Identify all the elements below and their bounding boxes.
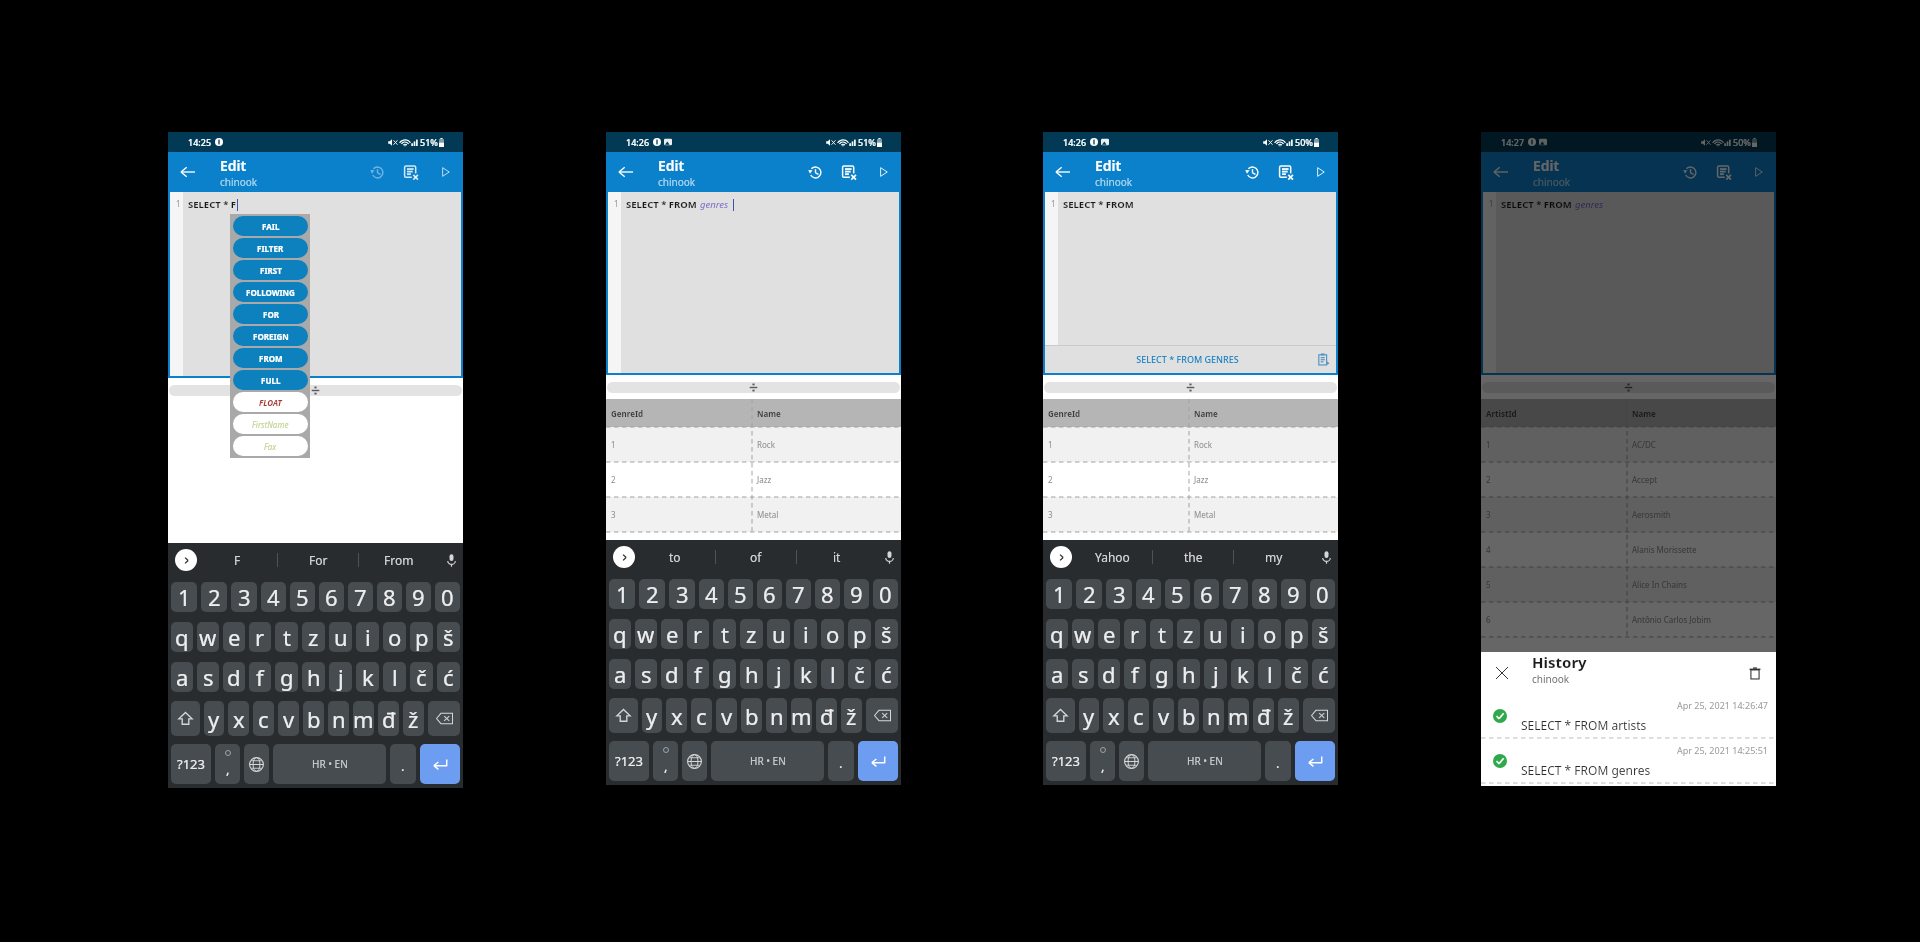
button[interactable]: a [609,659,631,689]
button[interactable]: FirstName [233,414,308,434]
button[interactable]: Fax [233,436,308,456]
button[interactable]: ž [841,698,862,733]
button[interactable]: đ [1253,698,1274,733]
button[interactable]: the [1153,540,1233,574]
button[interactable]: o [821,619,844,649]
button[interactable]: x [228,701,249,736]
button[interactable]: Close history [1481,652,1523,694]
button[interactable] [420,744,460,784]
button[interactable]: 5 [1481,567,1776,602]
button[interactable]: e [1098,619,1120,649]
button[interactable]: č [410,662,433,692]
button[interactable]: š [437,622,460,652]
button[interactable]: SELECT * FROM GENRES [1058,345,1336,373]
button[interactable]: FULL [233,370,308,390]
button[interactable]: Expand toolbar [1050,546,1072,568]
button[interactable]: FILTER [233,238,308,258]
button[interactable]: s [635,659,657,689]
button[interactable]: d [223,662,245,692]
button[interactable]: d [1098,659,1120,689]
button[interactable]: v [278,701,299,736]
button[interactable] [428,701,460,736]
button[interactable] [1046,698,1075,733]
button[interactable] [866,698,898,733]
button[interactable]: Expand toolbar [613,546,635,568]
button[interactable] [858,741,898,781]
button[interactable]: l [1258,659,1281,689]
button[interactable]: 1 [1046,579,1072,609]
button[interactable]: Clear query [394,155,428,189]
button[interactable]: 1 [606,427,901,462]
button[interactable]: 2 [639,579,665,609]
button[interactable]: . [828,741,854,781]
button[interactable]: 7 [348,582,373,612]
button[interactable]: g [1150,659,1173,689]
button[interactable]: đ [816,698,837,733]
button[interactable]: c [253,701,274,736]
button[interactable]: Voice input [1314,540,1338,574]
button[interactable]: m [791,698,812,733]
button[interactable]: HR • EN [1148,741,1261,781]
button[interactable] [609,698,638,733]
button[interactable]: 3 [1106,579,1132,609]
button[interactable]: ć [437,662,460,692]
button[interactable]: q [171,622,193,652]
button[interactable] [244,744,269,784]
button[interactable]: t [1150,619,1173,649]
button[interactable]: Apr 25, 2021 14:25:51 [1481,739,1776,784]
button[interactable]: 0 [873,579,898,609]
button[interactable]: ?123 [1046,741,1086,781]
button[interactable]: 2 [1481,462,1776,497]
button[interactable]: b [1178,698,1199,733]
button[interactable]: 6 [1194,579,1219,609]
button[interactable]: . [1265,741,1291,781]
button[interactable]: i [356,622,379,652]
button[interactable]: k [356,662,379,692]
button[interactable]: h [1177,659,1200,689]
button[interactable]: HR • EN [273,744,386,784]
button[interactable]: FAIL [233,216,308,236]
button[interactable]: k [794,659,817,689]
button[interactable] [682,741,707,781]
button[interactable]: c [1128,698,1149,733]
button[interactable]: v [716,698,737,733]
button[interactable]: u [329,622,352,652]
button[interactable]: Back [606,152,646,192]
button[interactable]: Resize editor [1044,382,1337,393]
button[interactable]: w [197,622,219,652]
button[interactable]: Voice input [439,543,463,577]
button[interactable]: u [1204,619,1227,649]
button[interactable]: 1 [609,579,635,609]
button[interactable]: ž [403,701,424,736]
button[interactable]: ž [1278,698,1299,733]
button[interactable]: r [1124,619,1146,649]
button[interactable]: s [1072,659,1094,689]
button[interactable]: f [249,662,271,692]
button[interactable]: Clear query [1269,155,1303,189]
button[interactable]: Clear query [1707,155,1741,189]
button[interactable]: 1 [1481,427,1776,462]
button[interactable]: g [713,659,736,689]
button[interactable]: ?123 [171,744,211,784]
button[interactable]: g [275,662,298,692]
button[interactable]: Run query [866,155,900,189]
button[interactable]: 7 [786,579,811,609]
button[interactable]: r [687,619,709,649]
button[interactable] [171,701,200,736]
button[interactable]: w [635,619,657,649]
button[interactable]: đ [378,701,399,736]
button[interactable]: Yahoo [1072,540,1152,574]
button[interactable]: F [197,543,277,577]
button[interactable]: FOR [233,304,308,324]
button[interactable]: j [329,662,352,692]
button[interactable]: Back [168,152,208,192]
button[interactable]: f [687,659,709,689]
button[interactable]: o [383,622,406,652]
button[interactable]: Resize editor [1482,382,1775,393]
button[interactable]: FOREIGN [233,326,308,346]
button[interactable]: . [390,744,416,784]
button[interactable]: 3 [669,579,695,609]
button[interactable]: 4 [1481,532,1776,567]
button[interactable] [1303,698,1335,733]
button[interactable]: 3 [231,582,257,612]
